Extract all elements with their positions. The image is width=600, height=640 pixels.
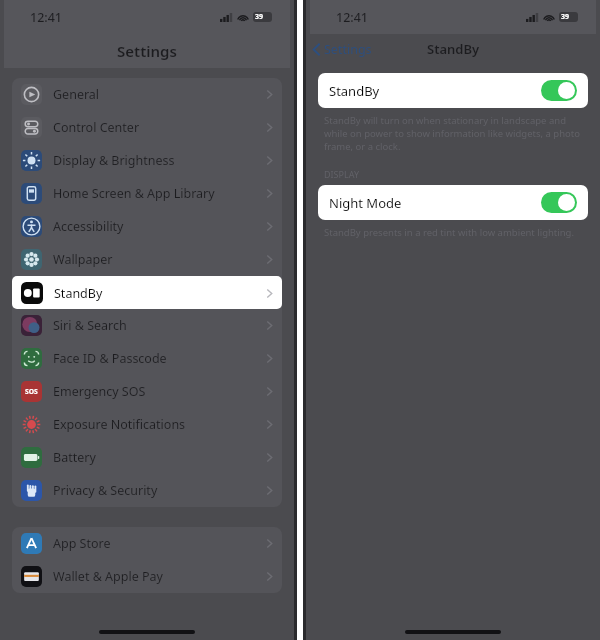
staticText: Settings xyxy=(324,41,372,58)
button[interactable]: Wallpaper xyxy=(12,243,282,276)
staticText: SOS xyxy=(25,387,38,396)
button[interactable]: Privacy & Security xyxy=(12,474,282,507)
staticText: Wallpaper xyxy=(53,251,113,268)
staticText: Settings xyxy=(117,41,177,61)
staticText: Siri & Search xyxy=(53,317,127,334)
staticText: Wallet & Apple Pay xyxy=(53,568,163,585)
staticText: StandBy xyxy=(329,82,380,100)
button[interactable]: Exposure Notifications xyxy=(12,408,282,441)
staticText: 12:41 xyxy=(336,9,369,26)
staticText: StandBy xyxy=(427,40,480,58)
button[interactable]: Control Center xyxy=(12,111,282,144)
button[interactable]: SOS xyxy=(12,375,282,408)
staticText: Night Mode xyxy=(329,194,402,212)
button[interactable]: Battery xyxy=(12,441,282,474)
button[interactable]: Home Screen & App Library xyxy=(12,177,282,210)
button[interactable]: Display & Brightness xyxy=(12,144,282,177)
staticText: StandBy xyxy=(54,285,103,302)
button[interactable]: Toggle, on xyxy=(541,192,577,213)
staticText: StandBy will turn on when stationary in … xyxy=(324,114,582,153)
button[interactable]: Toggle, on xyxy=(541,80,577,101)
staticText: App Store xyxy=(53,535,111,552)
staticText: Exposure Notifications xyxy=(53,416,186,433)
staticText: StandBy presents in a red tint with low … xyxy=(324,226,575,239)
button[interactable]: Siri & Search xyxy=(12,309,282,342)
staticText: General xyxy=(53,86,100,103)
staticText: Privacy & Security xyxy=(53,482,158,499)
button[interactable]: Face ID & Passcode xyxy=(12,342,282,375)
staticText: Emergency SOS xyxy=(53,383,146,400)
button[interactable]: StandBy xyxy=(12,276,282,309)
staticText: Display & Brightness xyxy=(53,152,175,169)
staticText: Face ID & Passcode xyxy=(53,350,167,367)
button[interactable]: Accessibility xyxy=(12,210,282,243)
staticText: Home Screen & App Library xyxy=(53,185,215,202)
staticText: 12:41 xyxy=(30,9,63,26)
button[interactable]: App Store xyxy=(12,527,282,560)
staticText: 39 xyxy=(255,12,264,22)
staticText: DISPLAY xyxy=(324,168,360,180)
button[interactable]: General xyxy=(12,78,282,111)
button[interactable]: Settings xyxy=(312,41,372,58)
button[interactable]: StandBy xyxy=(318,73,588,108)
staticText: 39 xyxy=(561,12,570,22)
button[interactable]: Night Mode xyxy=(318,185,588,220)
staticText: Battery xyxy=(53,449,96,466)
staticText: Control Center xyxy=(53,119,140,136)
button[interactable]: Wallet & Apple Pay xyxy=(12,560,282,593)
staticText: Accessibility xyxy=(53,218,124,235)
